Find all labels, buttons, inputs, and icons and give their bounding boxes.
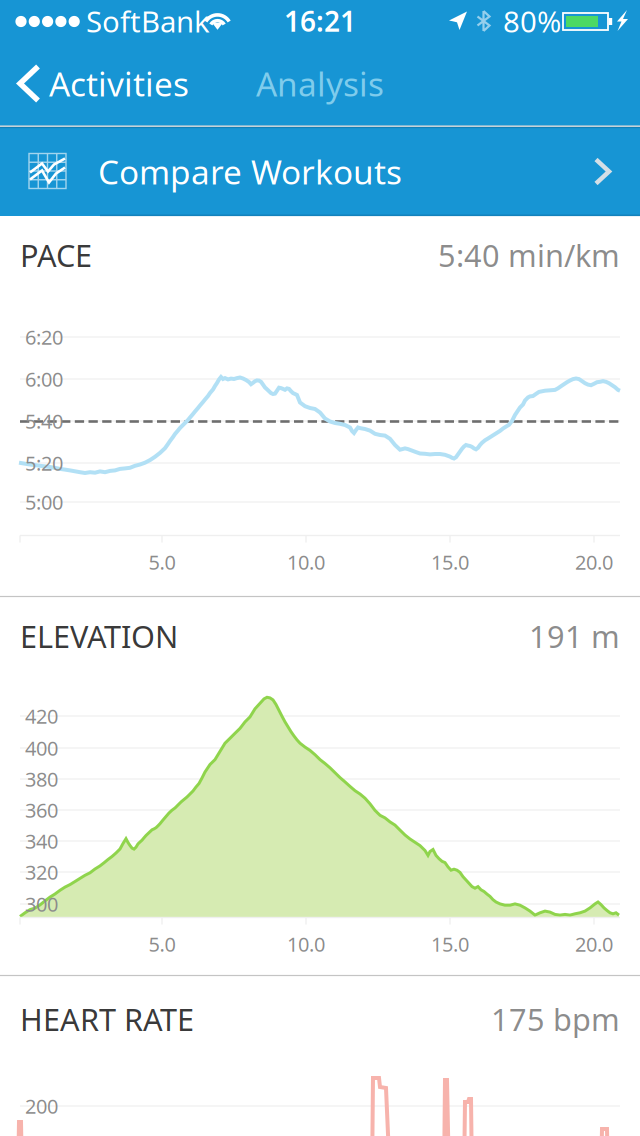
- staticText: Analysis: [256, 61, 384, 106]
- staticText: 5:00: [25, 489, 63, 515]
- staticText: 340: [25, 828, 58, 854]
- staticText: 6:00: [25, 366, 63, 392]
- button[interactable]: Activities: [0, 40, 230, 127]
- staticText: 6:20: [25, 324, 63, 350]
- staticText: 16:21: [284, 2, 356, 40]
- staticText: 5.0: [148, 931, 175, 957]
- staticText: HEART RATE: [20, 999, 194, 1039]
- staticText: 10.0: [287, 549, 325, 575]
- staticText: 10.0: [287, 931, 325, 957]
- staticText: 5.0: [148, 549, 175, 575]
- staticText: 400: [25, 735, 58, 761]
- button[interactable]: Compare Workouts: [0, 127, 640, 216]
- staticText: 5:20: [25, 450, 63, 476]
- staticText: 200: [25, 1093, 58, 1119]
- staticText: 420: [25, 703, 58, 729]
- staticText: 320: [25, 859, 58, 885]
- staticText: 5:40: [25, 408, 63, 434]
- staticText: 5:40 min/km: [438, 235, 620, 275]
- staticText: 380: [25, 766, 58, 792]
- staticText: 300: [25, 891, 58, 917]
- staticText: 20.0: [575, 931, 613, 957]
- staticText: Compare Workouts: [98, 149, 402, 194]
- staticText: 191 m: [529, 616, 620, 656]
- staticText: 360: [25, 797, 58, 823]
- staticText: SoftBank: [86, 1, 210, 40]
- staticText: 15.0: [431, 931, 469, 957]
- staticText: PACE: [20, 235, 92, 275]
- staticText: 20.0: [575, 549, 613, 575]
- staticText: 15.0: [431, 549, 469, 575]
- staticText: 80%: [503, 1, 561, 40]
- staticText: 175 bpm: [491, 999, 620, 1039]
- staticText: Activities: [49, 61, 189, 106]
- staticText: ELEVATION: [20, 616, 178, 656]
